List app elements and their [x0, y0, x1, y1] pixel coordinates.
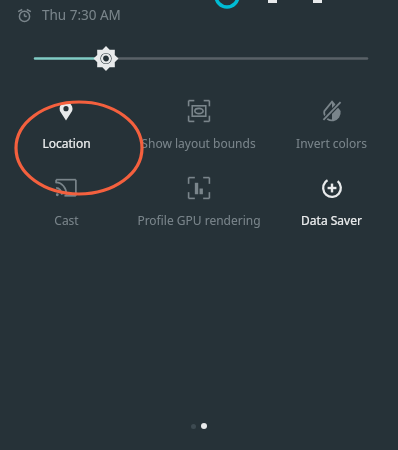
button[interactable]: Location	[0, 98, 132, 151]
staticText: Profile GPU rendering	[137, 212, 261, 228]
button[interactable]: Brightness	[0, 30, 398, 76]
button[interactable]: Cast	[0, 175, 132, 228]
staticText: Show layout bounds	[141, 135, 256, 151]
staticText: Invert colors	[296, 135, 367, 151]
staticText: Location	[42, 135, 91, 151]
button[interactable]: Data Saver	[265, 175, 398, 228]
staticText: Thu 7:30 AM	[42, 6, 121, 24]
button[interactable]: Profile GPU rendering	[132, 175, 265, 228]
staticText: Data Saver	[301, 212, 362, 228]
staticText: Cast	[54, 212, 79, 228]
button[interactable]: Invert colors	[265, 98, 398, 151]
button[interactable]: Show layout bounds	[132, 98, 265, 151]
